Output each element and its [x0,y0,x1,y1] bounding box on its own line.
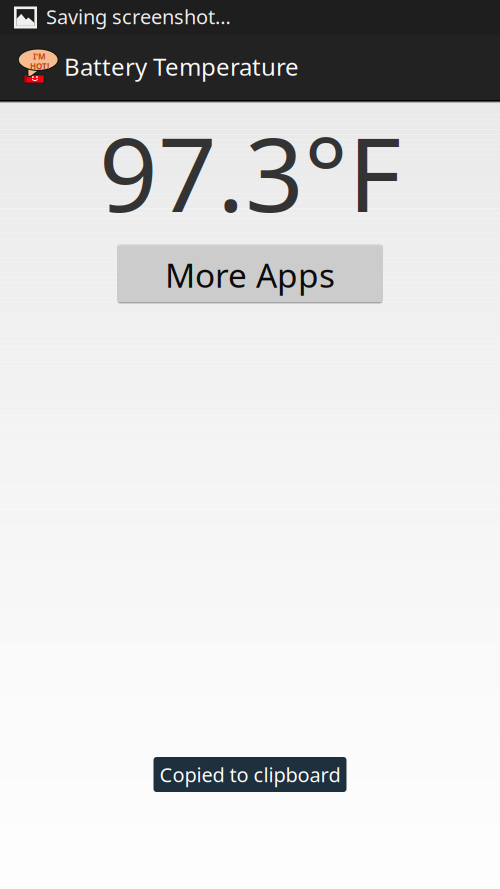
staticText: Saving screenshot… [46,3,231,30]
button[interactable]: More Apps [117,244,383,303]
staticText: More Apps [165,253,335,297]
staticText: Copied to clipboard [159,761,340,788]
button[interactable]: I'M [0,35,299,100]
staticText: 97.3°F [99,104,401,240]
staticText: HOT! [30,61,49,71]
staticText: Battery Temperature [64,51,299,82]
staticText: I'M [33,51,46,62]
